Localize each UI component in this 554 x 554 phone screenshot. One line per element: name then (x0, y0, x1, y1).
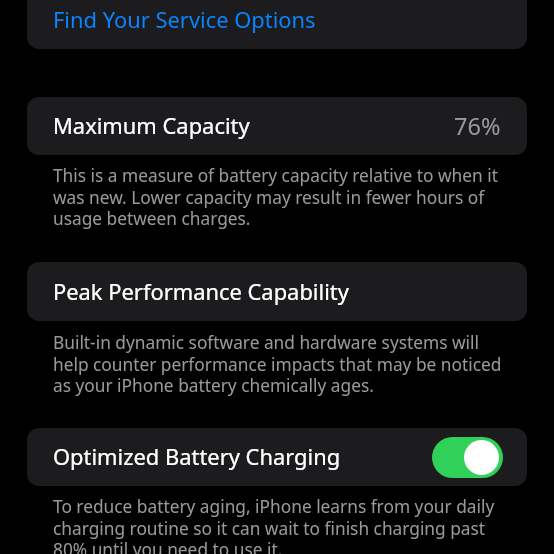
button[interactable]: Find Your Service Options (27, 0, 527, 49)
button[interactable]: Maximum Capacity (27, 97, 527, 155)
button[interactable]: Peak Performance Capability (27, 262, 527, 321)
button[interactable]: Optimized Battery Charging (27, 428, 527, 486)
staticText: Optimized Battery Charging (53, 442, 341, 472)
staticText: 76% (454, 110, 501, 142)
staticText: Built-in dynamic software and hardware s… (53, 331, 509, 397)
staticText: To reduce battery aging, iPhone learns f… (53, 495, 509, 554)
staticText: Find Your Service Options (53, 5, 316, 35)
staticText: This is a measure of battery capacity re… (53, 164, 509, 230)
button[interactable]: Optimized Battery Charging, on (432, 437, 503, 478)
staticText: Peak Performance Capability (53, 277, 349, 307)
staticText: Maximum Capacity (53, 111, 250, 141)
